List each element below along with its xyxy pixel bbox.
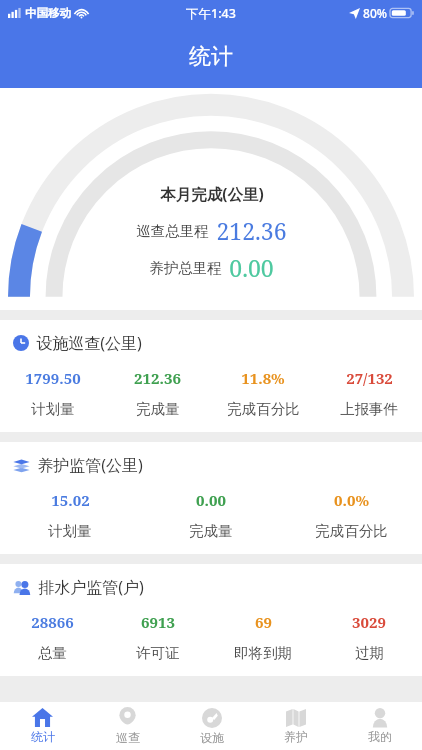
staticText: 统计 (189, 43, 233, 71)
button[interactable]: 我的 (338, 702, 422, 750)
button[interactable]: 养护 (254, 702, 338, 750)
button[interactable]: 养护监管(公里) (0, 442, 422, 554)
staticText: 养护总里程 (149, 259, 222, 277)
staticText: 巡查总里程 (136, 222, 209, 240)
button[interactable]: 设施巡查(公里) (0, 320, 422, 432)
staticText: 即将到期 (234, 644, 292, 662)
staticText: 1799.50 (25, 368, 81, 388)
staticText: 过期 (355, 644, 384, 662)
staticText: 统计 (31, 729, 55, 744)
staticText: 完成量 (189, 522, 233, 540)
staticText: 设施 (200, 730, 224, 745)
button[interactable]: 巡查 (85, 702, 170, 750)
staticText: 11.8% (241, 368, 285, 388)
staticText: 212.36 (216, 215, 287, 246)
button[interactable]: 排水户监管(户) (0, 564, 422, 676)
staticText: 许可证 (136, 644, 180, 662)
staticText: 0.00 (229, 252, 274, 283)
staticText: 15.02 (51, 490, 90, 510)
staticText: 下午1:43 (186, 5, 236, 22)
staticText: 69 (255, 612, 272, 632)
staticText: 总量 (38, 644, 67, 662)
staticText: 计划量 (31, 400, 75, 418)
staticText: 本月完成(公里) (160, 183, 264, 204)
staticText: 完成量 (136, 400, 180, 418)
staticText: 6913 (141, 612, 175, 632)
staticText: 排水户监管(户) (38, 576, 144, 598)
staticText: 212.36 (134, 368, 181, 388)
staticText: 我的 (368, 729, 392, 744)
staticText: 0.00 (196, 490, 226, 510)
staticText: 完成百分比 (227, 400, 300, 418)
staticText: 0.0% (334, 490, 369, 510)
staticText: 养护监管(公里) (37, 454, 143, 476)
staticText: 设施巡查(公里) (36, 332, 142, 354)
staticText: 养护 (284, 729, 308, 744)
staticText: 完成百分比 (315, 522, 388, 540)
staticText: 巡查 (116, 730, 140, 745)
staticText: 27/132 (346, 368, 393, 388)
staticText: 80% (363, 5, 387, 21)
staticText: 28866 (31, 612, 74, 632)
staticText: 计划量 (48, 522, 92, 540)
button[interactable]: 设施 (170, 702, 254, 750)
staticText: 中国移动 (25, 6, 71, 20)
staticText: 3029 (352, 612, 386, 632)
staticText: 上报事件 (340, 400, 398, 418)
button[interactable]: 统计 (0, 702, 85, 750)
